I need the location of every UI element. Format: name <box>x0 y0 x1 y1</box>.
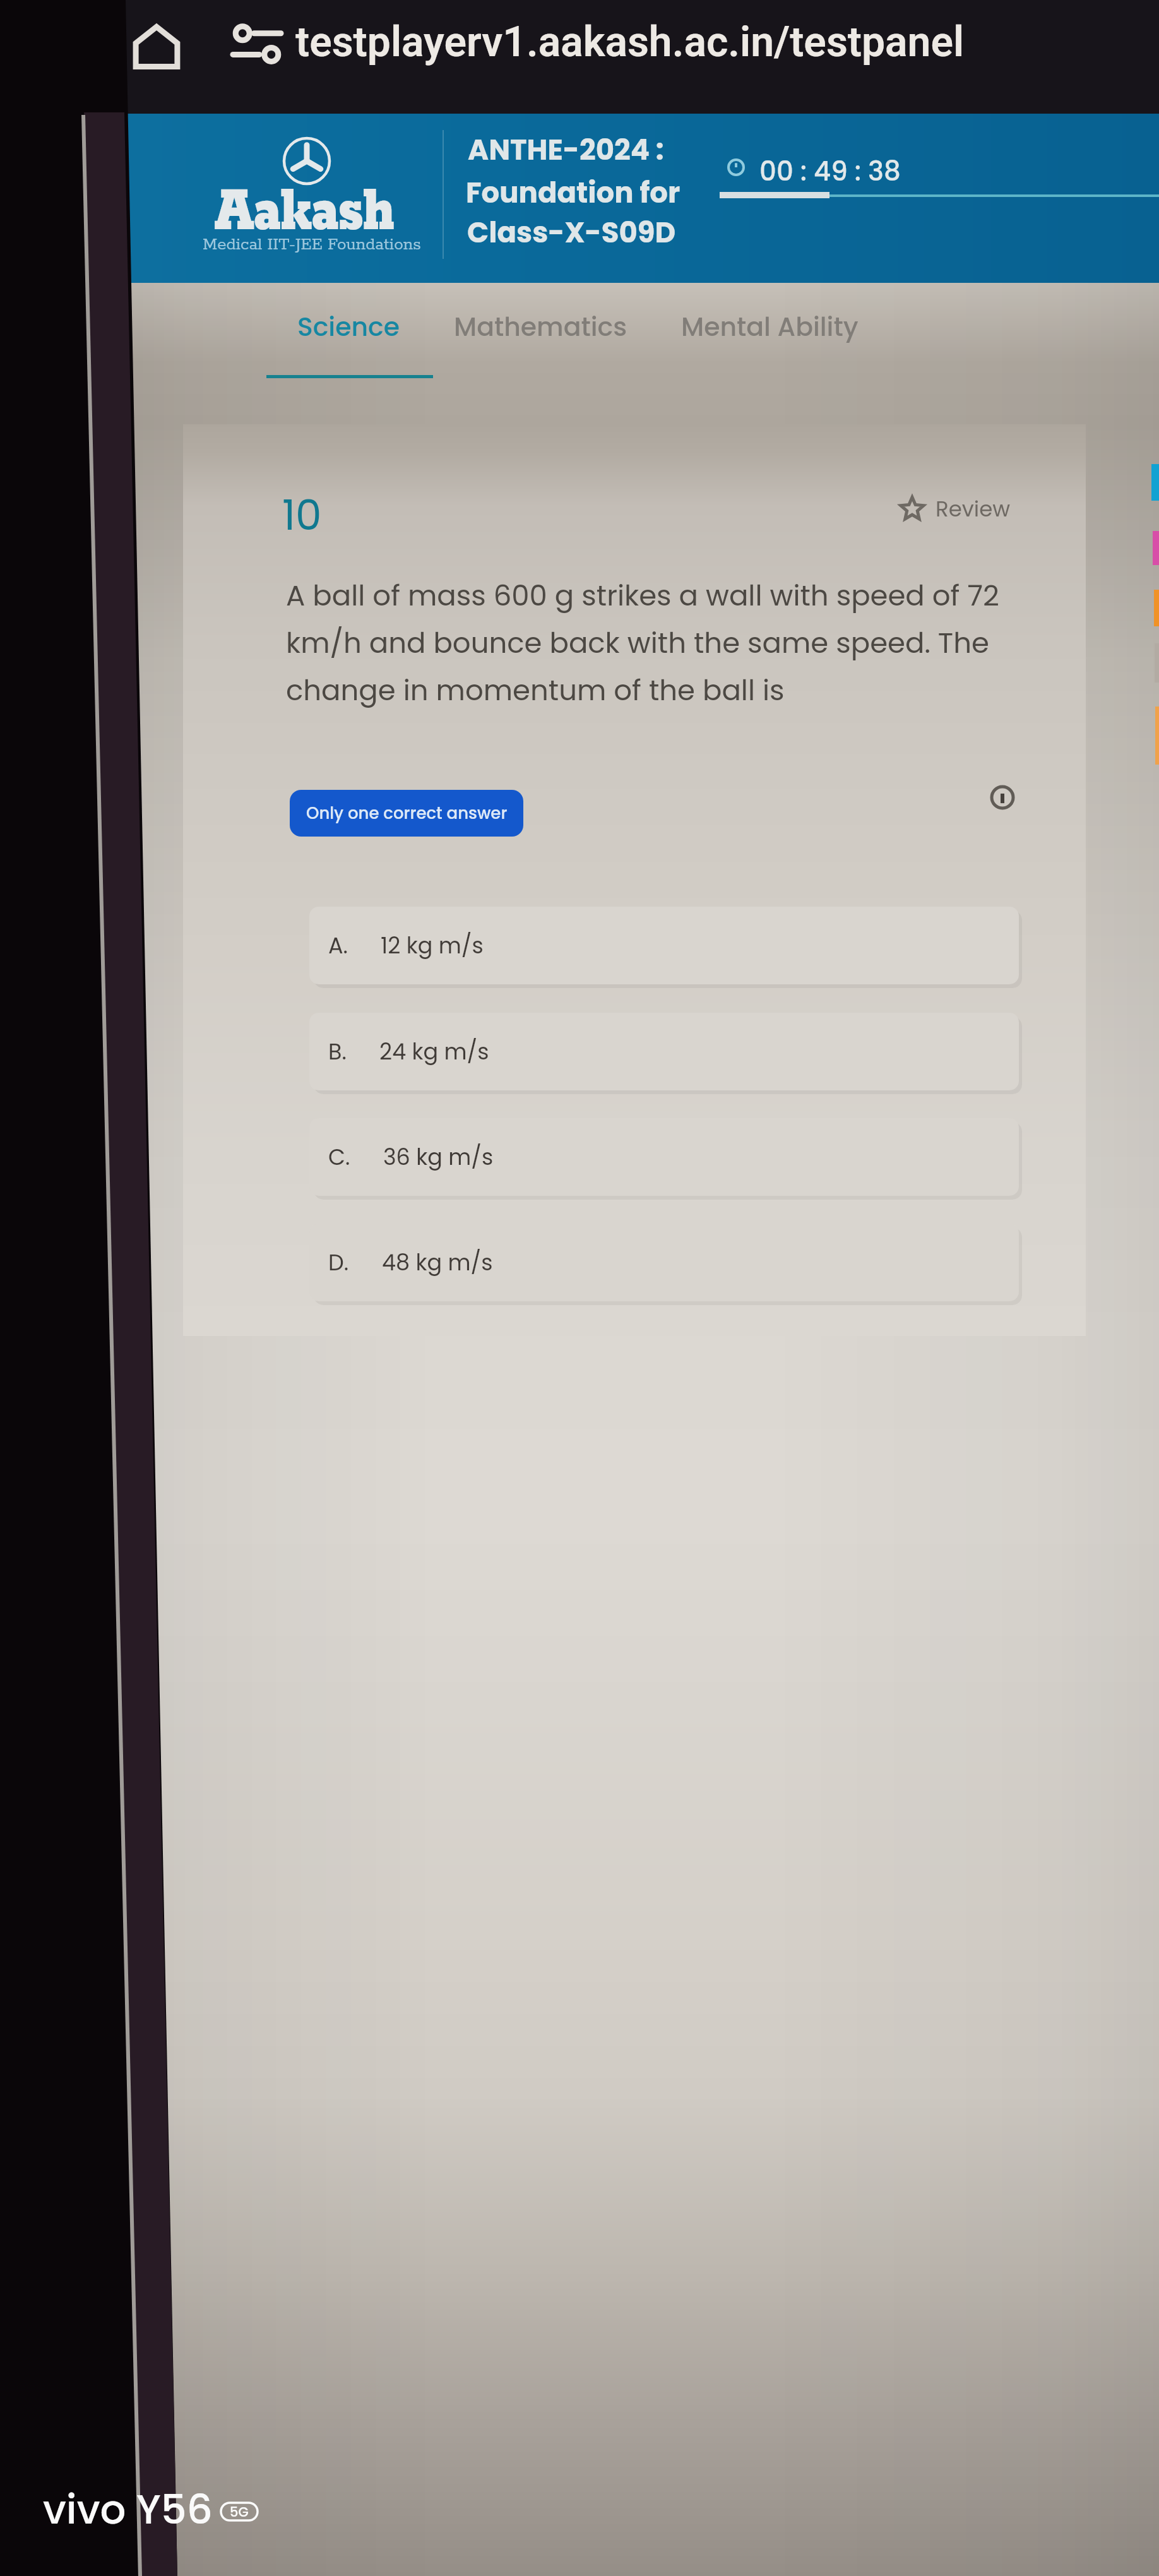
staticText: Only one correct answer <box>306 802 508 825</box>
staticText: Foundation for <box>466 173 681 213</box>
staticText: 10 <box>282 486 322 544</box>
button[interactable]: Mental Ability <box>656 297 884 356</box>
staticText: A. <box>328 930 348 961</box>
button[interactable]: Only one correct answer <box>290 790 523 837</box>
staticText: Science <box>297 309 400 345</box>
button[interactable]: B. <box>309 1013 1019 1090</box>
button[interactable]: D. <box>309 1224 1019 1301</box>
staticText: D. <box>328 1247 349 1278</box>
staticText: 12 kg m/s <box>381 930 484 961</box>
staticText: Mathematics <box>454 309 627 345</box>
staticText: Medical IIT-JEE Foundations <box>203 234 421 255</box>
staticText: 5G <box>230 2503 249 2520</box>
staticText: Aakash <box>215 173 395 251</box>
button[interactable]: Mathematics <box>429 297 653 356</box>
staticText: A ball of mass 600 g strikes a wall with… <box>286 576 1002 710</box>
staticText: B. <box>328 1036 347 1067</box>
staticText: 48 kg m/s <box>382 1247 493 1278</box>
staticText: C. <box>328 1142 350 1172</box>
button[interactable]: Site settings <box>230 21 284 66</box>
button[interactable]: Science <box>272 297 425 356</box>
staticText: Review <box>936 494 1011 524</box>
staticText: ANTHE-2024 : <box>468 130 664 170</box>
staticText: vivo Y56 <box>43 2481 213 2538</box>
button[interactable]: Information <box>984 779 1021 816</box>
staticText: Mental Ability <box>681 309 859 345</box>
button[interactable]: Review <box>899 492 1012 525</box>
staticText: Class-X-S09D <box>467 213 676 253</box>
staticText: 24 kg m/s <box>379 1036 489 1067</box>
button[interactable]: A. <box>309 907 1019 984</box>
staticText: 36 kg m/s <box>383 1142 494 1172</box>
staticText: 00 : 49 : 38 <box>759 153 901 190</box>
staticText: testplayerv1.aakash.ac.in/testpanel <box>295 18 965 66</box>
button[interactable]: Home <box>130 21 183 73</box>
button[interactable]: C. <box>309 1118 1019 1196</box>
